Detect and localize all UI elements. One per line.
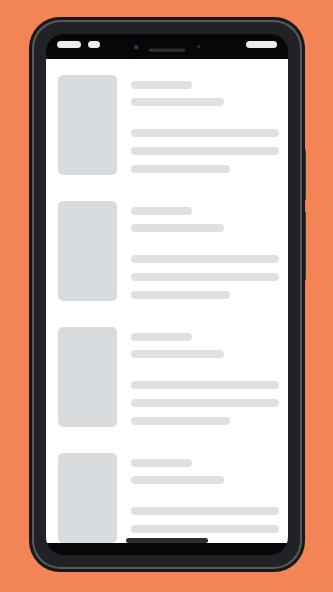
other: Volume buttons (301, 211, 306, 281)
button[interactable] (46, 449, 288, 543)
button[interactable] (46, 71, 288, 197)
button[interactable] (46, 197, 288, 323)
button[interactable] (46, 323, 288, 449)
other: Power button (301, 149, 306, 201)
